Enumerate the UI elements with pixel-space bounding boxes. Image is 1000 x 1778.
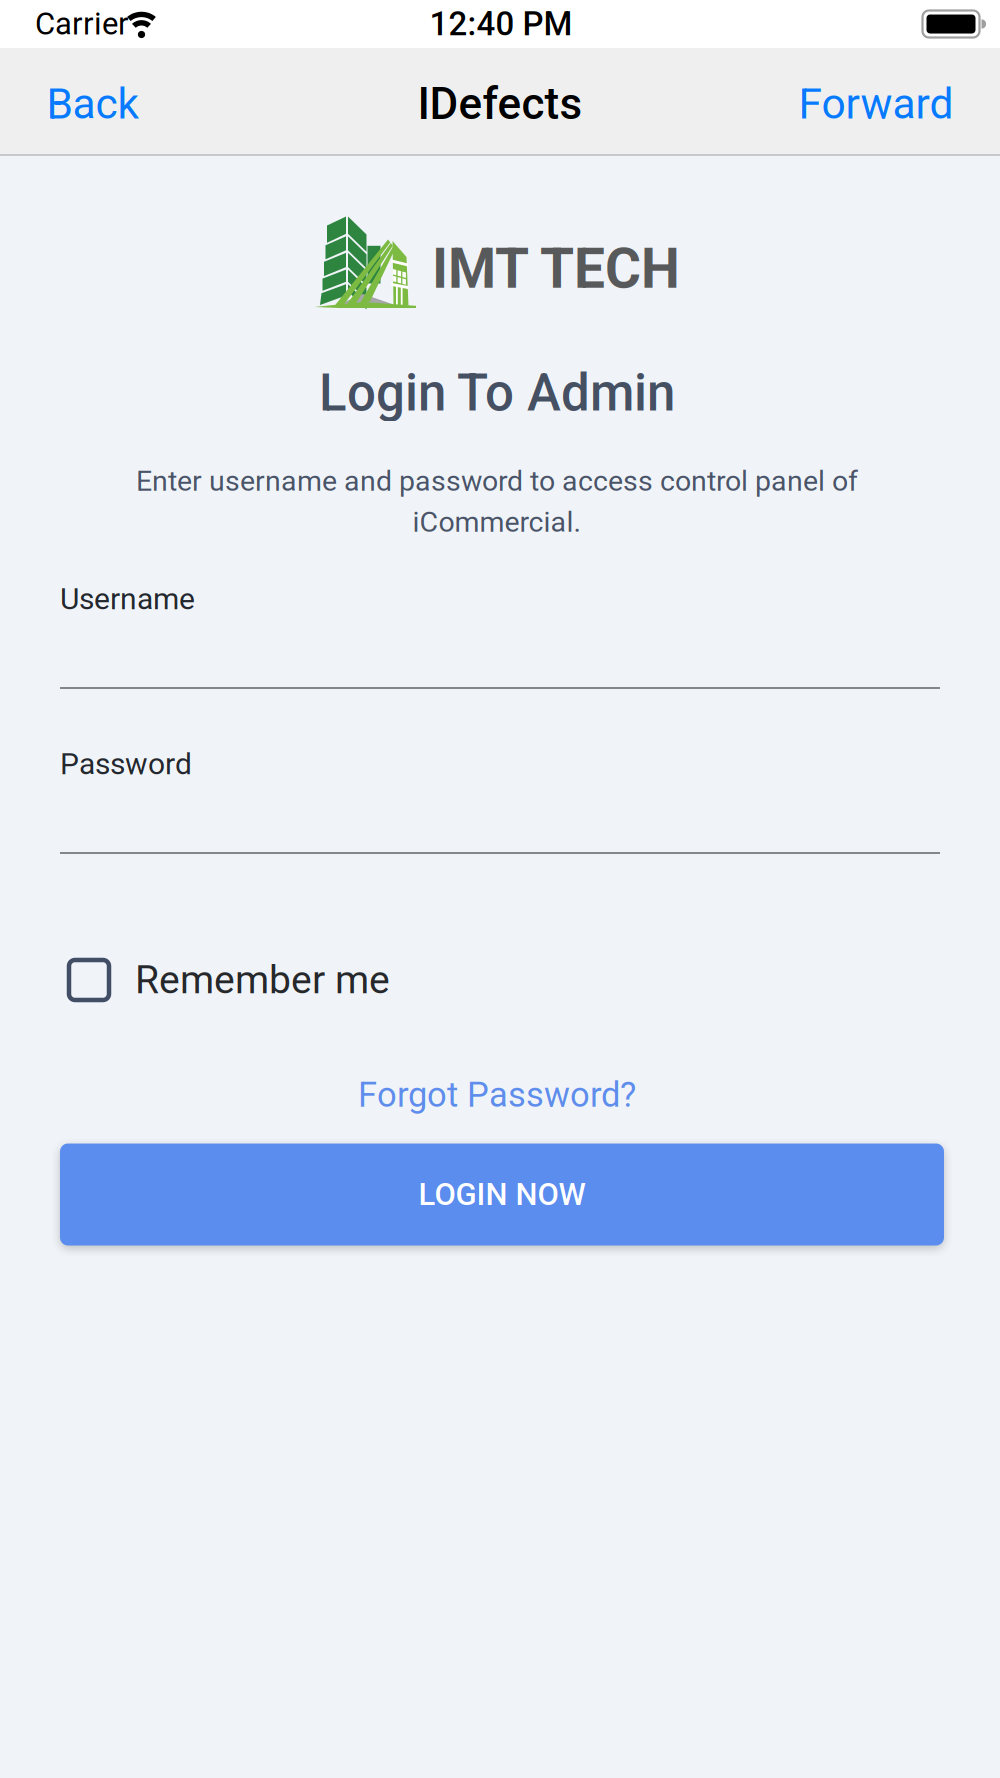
- staticText: LOGIN NOW: [418, 1176, 585, 1213]
- staticText: Back: [46, 79, 139, 129]
- staticText: IMT TECH: [432, 237, 680, 301]
- button[interactable]: Username: [60, 578, 940, 689]
- staticText: IDefects: [417, 78, 582, 130]
- button[interactable]: Remember me: [69, 957, 945, 1003]
- staticText: iCommercial.: [412, 505, 581, 539]
- button[interactable]: Password: [60, 743, 940, 854]
- button[interactable]: Back: [46, 79, 139, 129]
- staticText: Carrier: [35, 6, 129, 42]
- staticText: 12:40 PM: [429, 5, 572, 43]
- button[interactable]: Forward: [798, 79, 953, 129]
- staticText: Username: [60, 581, 195, 617]
- staticText: Enter username and password to access co…: [136, 464, 858, 498]
- staticText: Forgot Password?: [358, 1075, 636, 1115]
- button[interactable]: LOGIN NOW: [60, 1143, 944, 1245]
- staticText: Forward: [798, 79, 953, 129]
- staticText: Remember me: [135, 957, 390, 1003]
- staticText: Login To Admin: [319, 363, 675, 423]
- button[interactable]: Forgot Password?: [358, 1075, 636, 1115]
- staticText: Password: [60, 746, 192, 782]
